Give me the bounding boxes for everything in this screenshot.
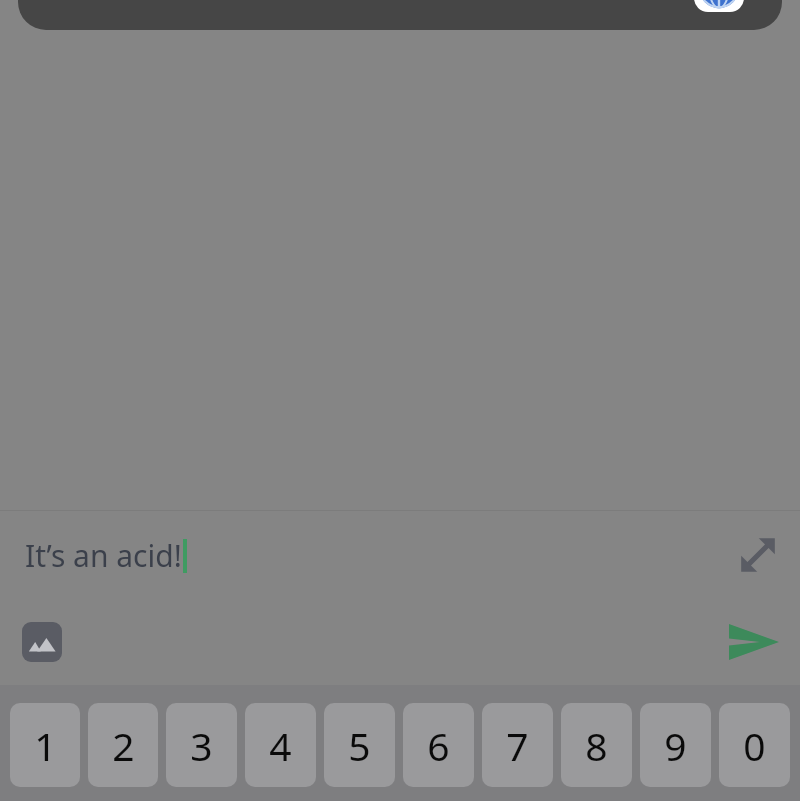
button[interactable]: Attach image bbox=[10, 610, 74, 674]
staticText: 2 bbox=[112, 719, 135, 772]
staticText: 4 bbox=[269, 719, 292, 772]
staticText: 1 bbox=[34, 719, 57, 772]
staticText: 5 bbox=[348, 719, 371, 772]
button[interactable]: 5 bbox=[324, 703, 395, 787]
button[interactable]: Expand bbox=[730, 527, 786, 583]
button[interactable]: 4 bbox=[245, 703, 316, 787]
staticText: It’s an acid! bbox=[25, 535, 182, 576]
staticText: 7 bbox=[506, 719, 529, 772]
button[interactable]: 6 bbox=[403, 703, 474, 787]
button[interactable]: 9 bbox=[640, 703, 711, 787]
button[interactable]: 2 bbox=[88, 703, 158, 787]
button[interactable]: 1 bbox=[10, 703, 80, 787]
button[interactable]: Send bbox=[722, 610, 786, 674]
staticText: 9 bbox=[664, 719, 687, 772]
staticText: 0 bbox=[743, 719, 766, 772]
button[interactable]: 8 bbox=[561, 703, 632, 787]
button[interactable]: 7 bbox=[482, 703, 553, 787]
staticText: 3 bbox=[190, 719, 213, 772]
button[interactable]: Account bbox=[694, 0, 744, 12]
button[interactable]: 3 bbox=[166, 703, 237, 787]
button[interactable]: 0 bbox=[719, 703, 790, 787]
button[interactable]: It’s an acid! bbox=[0, 511, 800, 599]
staticText: 8 bbox=[585, 719, 608, 772]
staticText: 6 bbox=[427, 719, 450, 772]
